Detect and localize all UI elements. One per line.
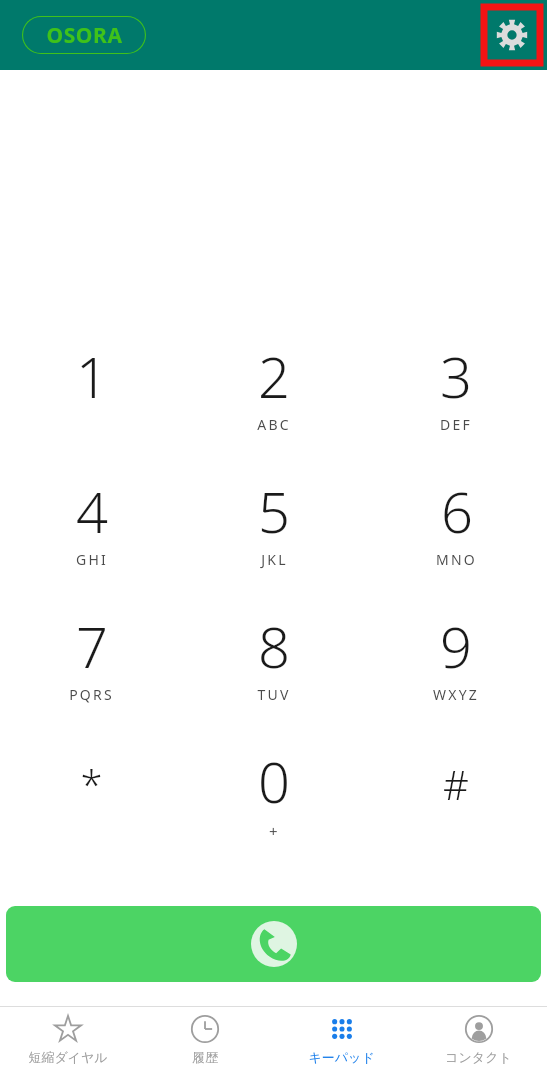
button[interactable]: 2 bbox=[183, 338, 365, 473]
staticText: 0 bbox=[258, 743, 290, 819]
staticText: # bbox=[443, 757, 469, 811]
button[interactable]: 9 bbox=[365, 608, 547, 743]
staticText: ABC bbox=[257, 415, 291, 434]
staticText: 1 bbox=[76, 338, 108, 414]
staticText: GHI bbox=[76, 550, 108, 569]
button[interactable]: 3 bbox=[365, 338, 547, 473]
button[interactable]: 履歴 bbox=[136, 1007, 273, 1079]
staticText: DEF bbox=[440, 415, 472, 434]
button[interactable]: 短縮ダイヤル bbox=[0, 1007, 136, 1079]
button[interactable]: 5 bbox=[183, 473, 365, 608]
staticText: OSORA bbox=[46, 21, 123, 50]
button[interactable]: * bbox=[0, 743, 183, 878]
staticText: PQRS bbox=[69, 685, 114, 704]
button[interactable]: 7 bbox=[0, 608, 183, 743]
button[interactable]: 6 bbox=[365, 473, 547, 608]
button[interactable]: 8 bbox=[183, 608, 365, 743]
staticText: 3 bbox=[440, 338, 472, 414]
staticText: WXYZ bbox=[433, 685, 479, 704]
staticText: コンタクト bbox=[445, 1049, 512, 1065]
staticText: * bbox=[80, 757, 103, 811]
staticText: + bbox=[269, 821, 280, 841]
button[interactable]: 0 bbox=[183, 743, 365, 878]
staticText: MNO bbox=[436, 550, 477, 569]
staticText: 4 bbox=[76, 473, 108, 549]
button[interactable]: コンタクト bbox=[410, 1007, 547, 1079]
button[interactable]: Call bbox=[6, 906, 541, 982]
staticText: TUV bbox=[257, 685, 291, 704]
staticText: 5 bbox=[258, 473, 290, 549]
button[interactable]: OSORA bbox=[22, 16, 146, 54]
button[interactable]: 4 bbox=[0, 473, 183, 608]
button[interactable]: 1 bbox=[0, 338, 183, 473]
button[interactable]: # bbox=[365, 743, 547, 878]
staticText: 8 bbox=[258, 608, 290, 684]
staticText: JKL bbox=[261, 550, 288, 569]
button[interactable]: キーパッド bbox=[273, 1007, 410, 1079]
staticText: 短縮ダイヤル bbox=[28, 1049, 108, 1065]
staticText: 7 bbox=[76, 608, 108, 684]
staticText: 履歴 bbox=[192, 1049, 218, 1065]
staticText: 2 bbox=[258, 338, 290, 414]
staticText: 9 bbox=[440, 608, 472, 684]
staticText: 6 bbox=[441, 473, 473, 549]
staticText: キーパッド bbox=[308, 1049, 375, 1065]
button[interactable]: Settings bbox=[484, 7, 540, 63]
